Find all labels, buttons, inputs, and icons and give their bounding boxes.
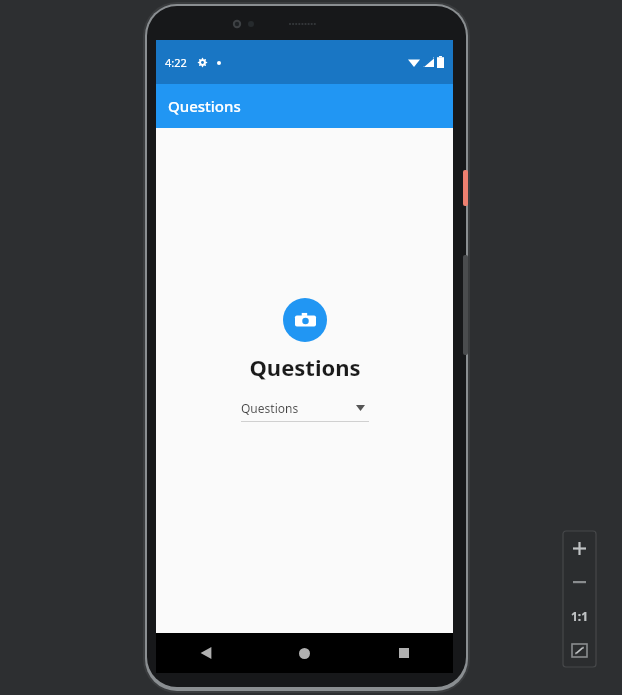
button[interactable]: Questions <box>156 84 453 128</box>
button[interactable]: Recent apps <box>354 633 453 673</box>
button[interactable]: Zoom in <box>563 531 596 565</box>
staticText: 4:22 <box>165 55 187 70</box>
button[interactable]: Home <box>255 633 354 673</box>
button[interactable]: Actual size <box>563 599 596 633</box>
button[interactable]: Take photo <box>283 298 327 342</box>
staticText: Questions <box>241 400 299 416</box>
staticText: 1:1 <box>571 608 589 624</box>
other: Power <box>463 170 468 206</box>
button[interactable]: Fit to screen <box>563 633 596 667</box>
button[interactable]: Questions <box>241 398 369 422</box>
staticText: Questions <box>249 352 361 382</box>
other: Volume <box>463 255 468 355</box>
button[interactable]: Zoom out <box>563 565 596 599</box>
staticText: Questions <box>168 96 241 116</box>
button[interactable]: Back <box>156 633 255 673</box>
